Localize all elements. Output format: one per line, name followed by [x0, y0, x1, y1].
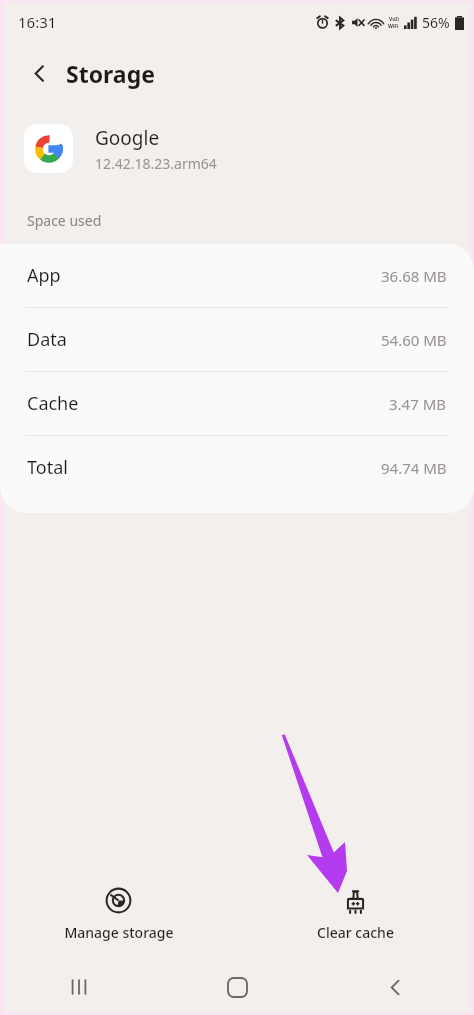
staticText: 94.74 MB	[381, 458, 447, 478]
staticText: Manage storage	[64, 923, 174, 942]
staticText: 54.60 MB	[381, 330, 447, 350]
staticText: 3.47 MB	[389, 394, 447, 414]
staticText: Cache	[27, 391, 79, 416]
staticText: Google	[95, 125, 160, 151]
staticText: 56%	[422, 13, 450, 32]
button[interactable]: Clear cache	[237, 881, 474, 948]
staticText: Clear cache	[317, 923, 394, 942]
staticText: Data	[27, 327, 67, 352]
button[interactable]: Manage storage	[0, 881, 237, 948]
button[interactable]: Recent apps	[0, 965, 158, 1009]
button[interactable]: App	[0, 244, 474, 307]
button[interactable]: Cache	[0, 372, 474, 435]
staticText: Storage	[66, 58, 155, 89]
staticText: Space used	[27, 211, 102, 230]
button[interactable]: Data	[0, 308, 474, 371]
staticText: VoI)	[389, 16, 399, 23]
button[interactable]: Home	[158, 965, 316, 1009]
staticText: 12.42.18.23.arm64	[95, 154, 217, 173]
button[interactable]: Back	[20, 54, 58, 92]
staticText: WiFi	[388, 23, 399, 30]
staticText: Total	[27, 455, 68, 480]
button[interactable]: Total	[0, 436, 474, 499]
staticText: 16:31	[18, 12, 57, 32]
button[interactable]: Back	[316, 965, 474, 1009]
staticText: App	[27, 263, 61, 288]
staticText: 36.68 MB	[381, 266, 447, 286]
